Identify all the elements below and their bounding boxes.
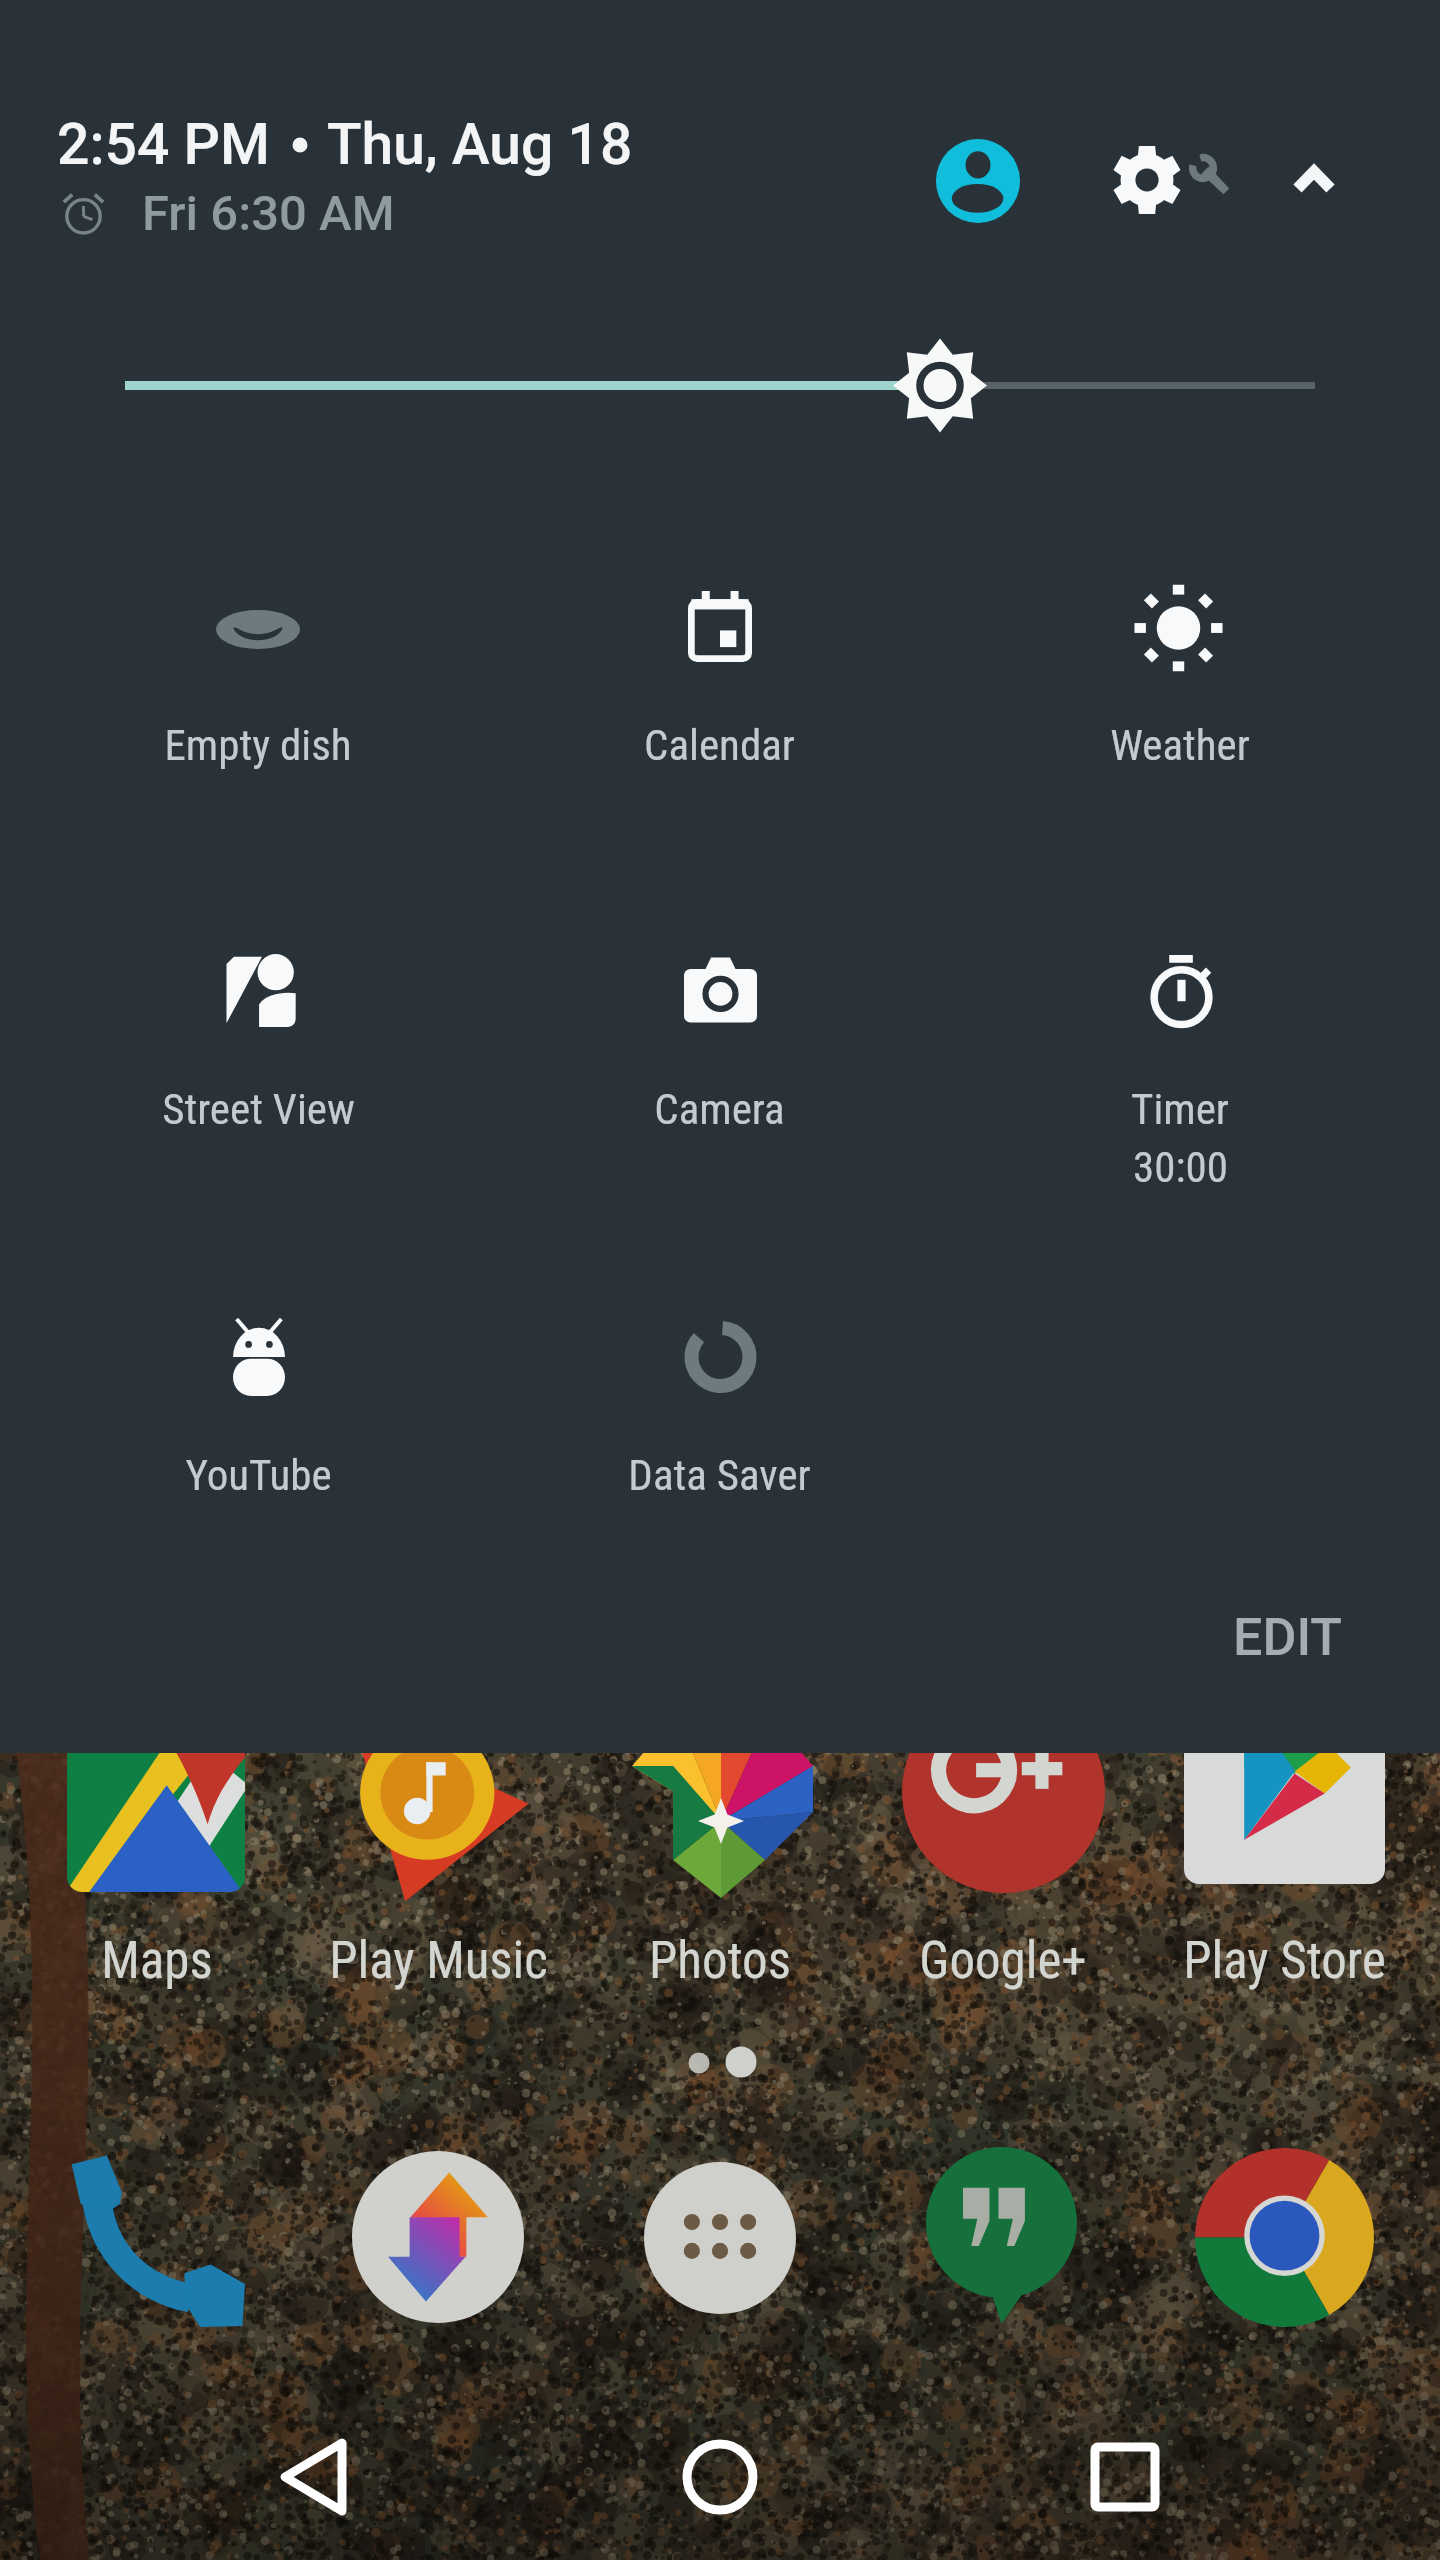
button[interactable]: Play Store: [1144, 1700, 1424, 1990]
button[interactable]: YouTube: [83, 1340, 433, 1570]
button[interactable]: Collapse: [1258, 124, 1370, 236]
staticText: Data Saver: [628, 1450, 811, 1500]
button[interactable]: Empty dish: [83, 610, 433, 840]
staticText: Weather: [1110, 720, 1250, 770]
button[interactable]: Street View: [83, 974, 433, 1204]
staticText: Play Store: [1183, 1931, 1386, 1991]
button[interactable]: Maps: [17, 1700, 297, 1990]
staticText: Empty dish: [164, 720, 352, 770]
button[interactable]: Play Music: [298, 1700, 578, 1990]
button[interactable]: Home: [650, 2407, 790, 2547]
staticText: Timer: [1131, 1084, 1229, 1134]
button[interactable]: Shuttle: [342, 2143, 532, 2333]
button[interactable]: Data Saver: [544, 1340, 894, 1570]
button[interactable]: Photos: [580, 1700, 860, 1990]
staticText: Thu, Aug 18: [327, 111, 633, 178]
button[interactable]: Weather: [1005, 610, 1355, 840]
staticText: Maps: [101, 1931, 213, 1991]
button[interactable]: Chrome: [1188, 2143, 1378, 2333]
staticText: Photos: [649, 1931, 791, 1991]
button[interactable]: Calendar: [544, 610, 894, 840]
staticText: 2:54 PM: [57, 111, 270, 178]
staticText: Play Music: [329, 1931, 548, 1991]
staticText: Fri 6:30 AM: [142, 185, 395, 242]
button[interactable]: Camera: [544, 974, 894, 1204]
button[interactable]: Settings: [1096, 130, 1246, 230]
button[interactable]: Phone: [61, 2143, 251, 2333]
button[interactable]: Hangouts: [906, 2143, 1096, 2333]
staticText: Street View: [162, 1084, 355, 1134]
staticText: YouTube: [185, 1450, 332, 1500]
button[interactable]: Recents: [1055, 2407, 1195, 2547]
staticText: Google+: [919, 1931, 1087, 1991]
button[interactable]: EDIT: [1174, 1577, 1400, 1697]
button[interactable]: All apps: [624, 2143, 814, 2333]
button[interactable]: Google+: [863, 1700, 1143, 1990]
staticText: Camera: [654, 1084, 785, 1134]
button[interactable]: User profile: [922, 125, 1034, 237]
button[interactable]: Timer: [1005, 974, 1355, 1204]
button[interactable]: Back: [245, 2407, 385, 2547]
staticText: EDIT: [1233, 1607, 1342, 1668]
staticText: Calendar: [644, 720, 795, 770]
staticText: 30:00: [1133, 1142, 1228, 1192]
